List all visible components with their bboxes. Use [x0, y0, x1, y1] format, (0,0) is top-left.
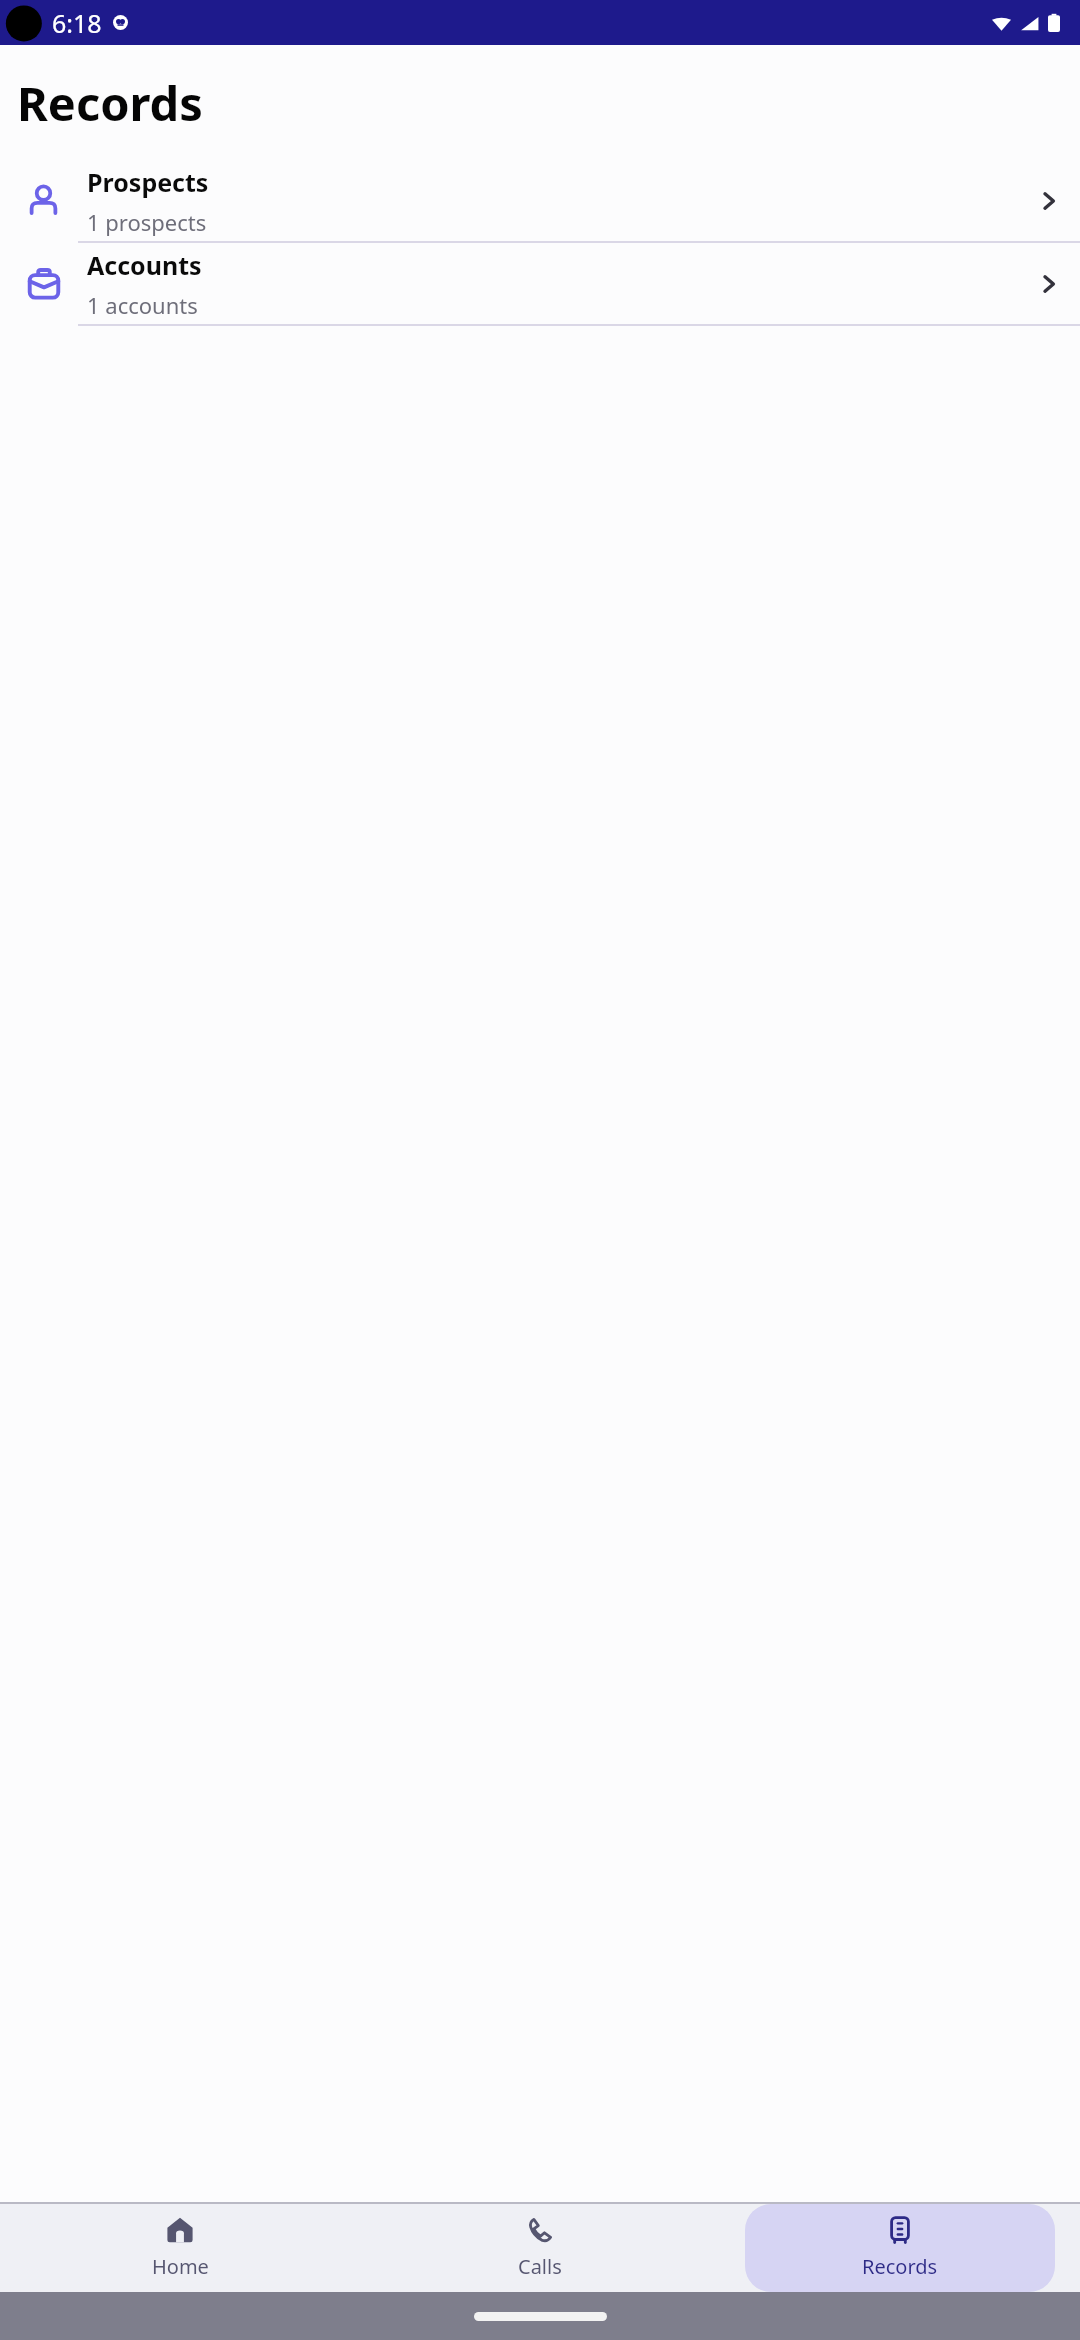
other: Calls [526, 2216, 554, 2244]
staticText: Accounts [87, 248, 202, 282]
button[interactable]: Prospects [0, 160, 1080, 243]
staticText: Records [862, 2253, 938, 2280]
other: Home [166, 2216, 194, 2244]
button[interactable]: Calls [360, 2204, 720, 2292]
other: Records [886, 2216, 914, 2244]
staticText: 1 prospects [87, 207, 207, 237]
button[interactable]: Home [0, 2204, 360, 2292]
staticText: Records [17, 71, 203, 135]
staticText: Prospects [87, 165, 209, 199]
staticText: Calls [518, 2253, 562, 2280]
button[interactable]: Accounts [0, 243, 1080, 326]
staticText: 1 accounts [87, 290, 198, 320]
button[interactable]: Records [745, 2204, 1055, 2292]
staticText: Home [152, 2253, 209, 2280]
staticText: 6:18 [52, 6, 102, 40]
